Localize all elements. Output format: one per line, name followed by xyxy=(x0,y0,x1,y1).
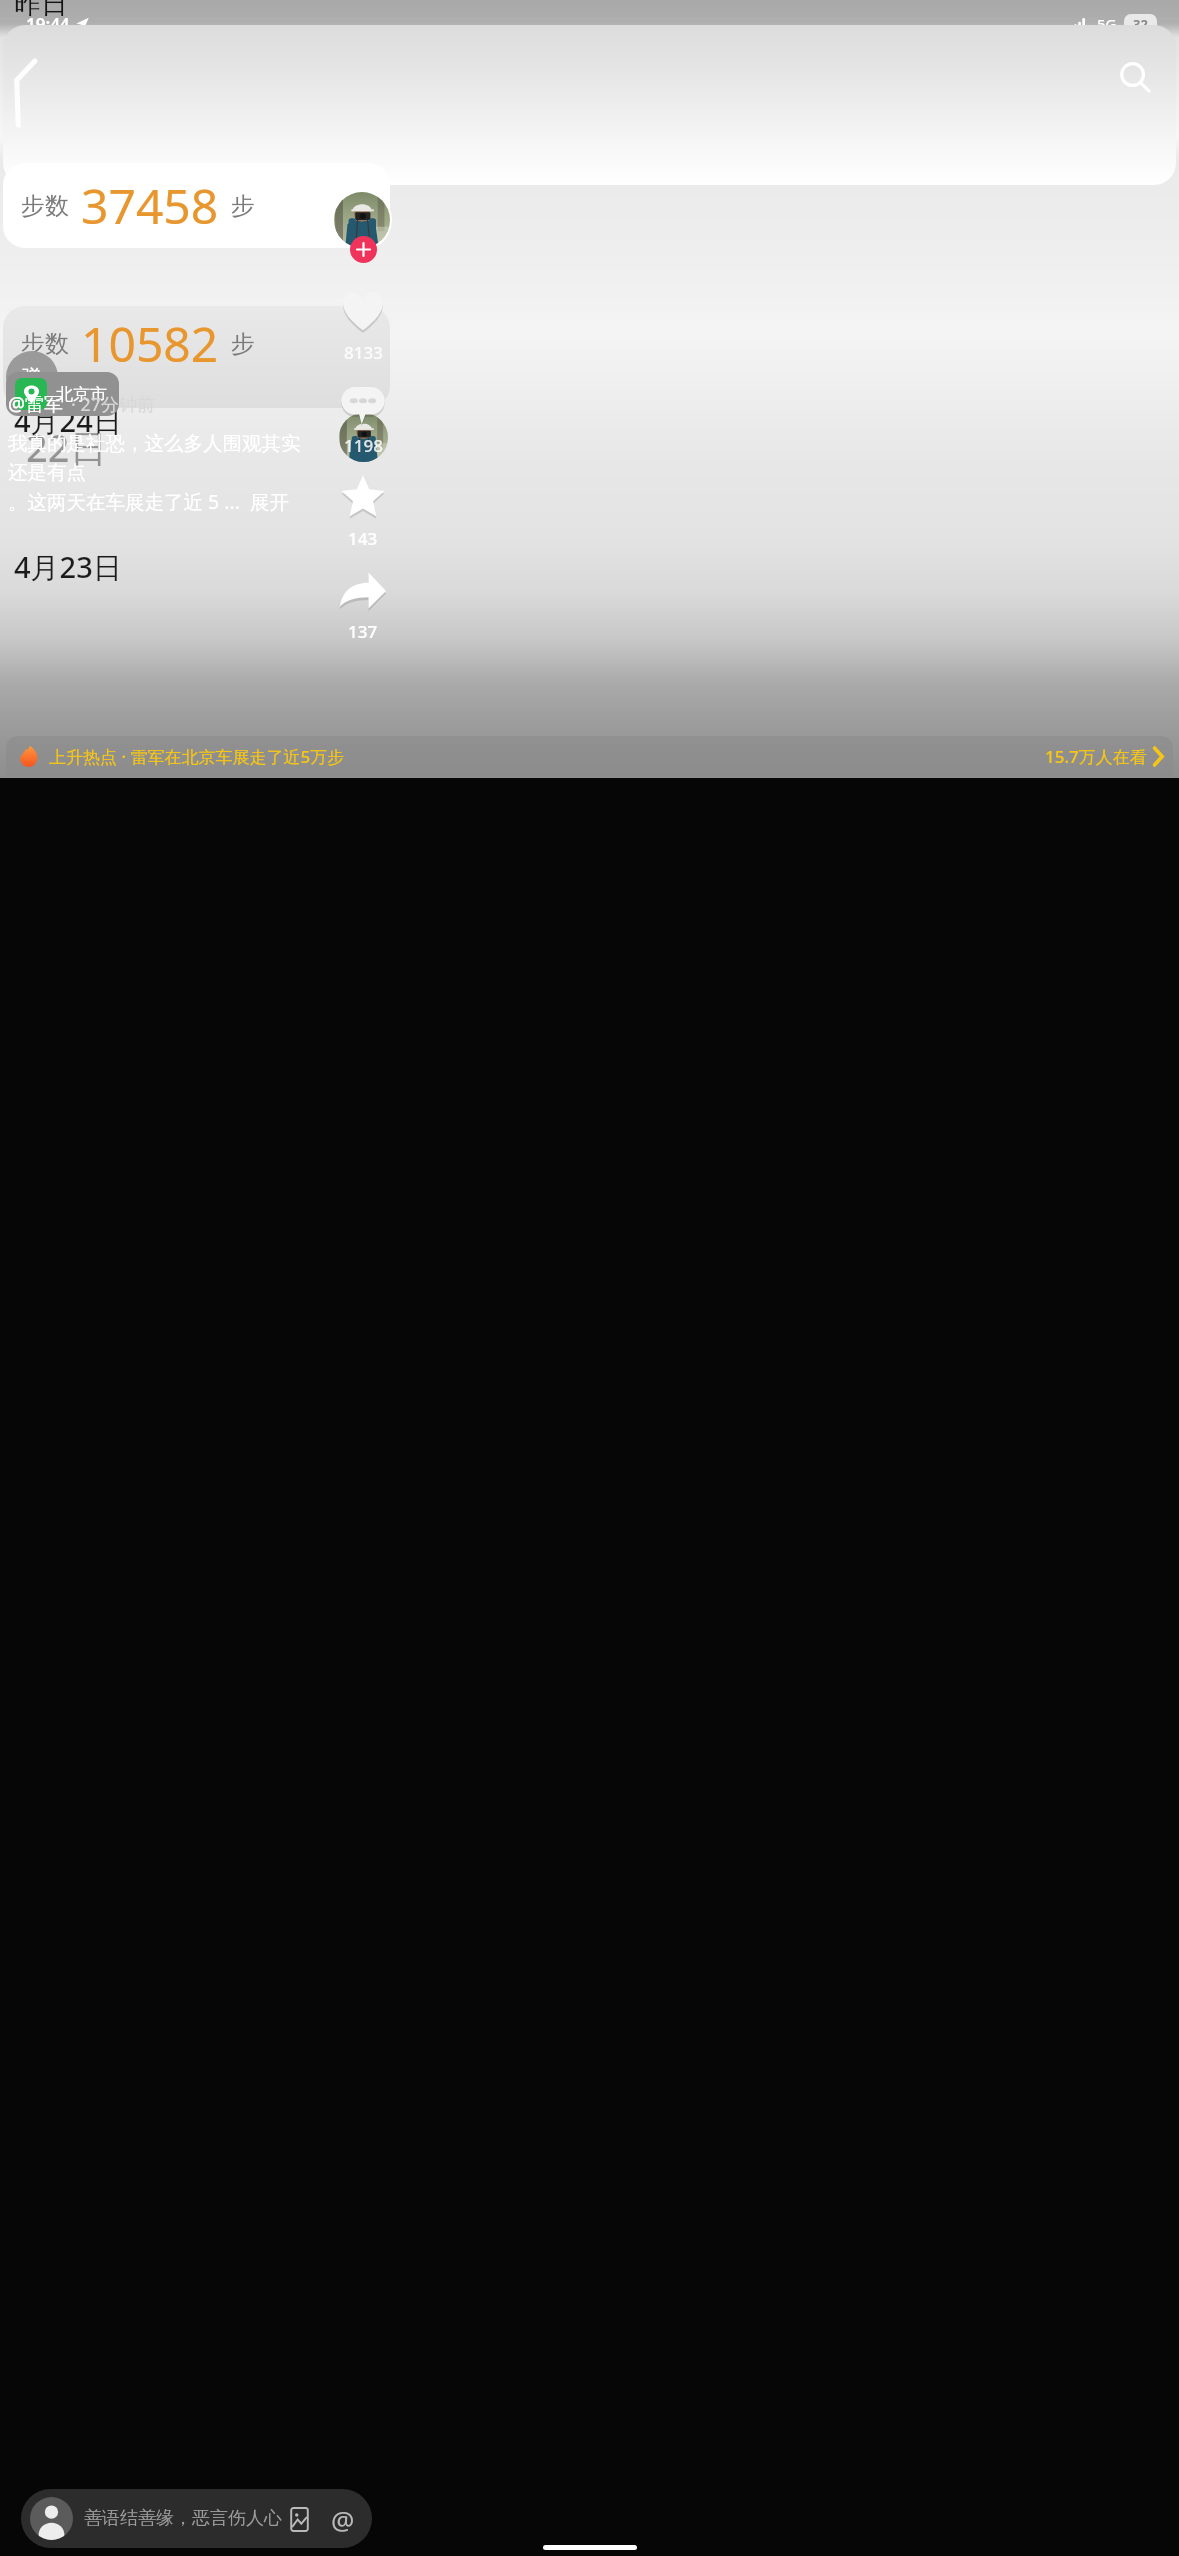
staticText: 我真的是社恐，这么多人围观其实还是有点 xyxy=(8,431,308,484)
staticText: 步 xyxy=(231,191,255,221)
button[interactable]: 善语结善缘，恶言伤人心 xyxy=(30,2489,363,2548)
button[interactable]: 提及 xyxy=(326,2502,360,2536)
staticText: 37458 xyxy=(81,173,219,238)
staticText: 137 xyxy=(348,620,378,643)
staticText: 15.7万人在看 xyxy=(1045,745,1147,768)
staticText: 4月23日 xyxy=(14,547,122,587)
staticText: · 27分钟前 xyxy=(71,392,156,417)
button[interactable]: 互动 1198 xyxy=(334,375,392,433)
staticText: 步数 xyxy=(21,191,69,221)
staticText: 22日 xyxy=(26,421,108,473)
staticText: 。这两天在车展走了近 5 ... xyxy=(8,488,240,515)
staticText: 5G xyxy=(1097,14,1117,34)
staticText: 上升热点 · 雷军在北京车展走了近5万步 xyxy=(49,745,345,768)
staticText: 19:44 xyxy=(26,13,70,36)
button[interactable]: 互动 143 xyxy=(334,468,392,526)
button[interactable]: @雷军 xyxy=(8,391,64,417)
button[interactable]: 上升热点 · 雷军在北京车展走了近5万步 xyxy=(18,736,1163,776)
button[interactable]: 步数 xyxy=(3,306,390,408)
staticText: 昨日 xyxy=(14,0,68,21)
staticText: 步数 xyxy=(21,329,69,359)
button[interactable]: 步数 xyxy=(3,163,390,248)
button[interactable]: Back xyxy=(11,61,37,125)
staticText: 10582 xyxy=(81,311,219,376)
staticText: 143 xyxy=(348,527,378,550)
button[interactable]: 展开 xyxy=(250,490,289,515)
button[interactable]: 互动 137 xyxy=(334,561,392,619)
staticText: 4月24日 xyxy=(14,401,122,441)
staticText: 32 xyxy=(1133,15,1148,33)
staticText: 善语结善缘，恶言伤人心 xyxy=(84,2507,282,2530)
button[interactable] xyxy=(339,413,388,462)
staticText: @ xyxy=(331,2502,355,2536)
button[interactable]: Search xyxy=(1110,52,1162,104)
staticText: 弹 xyxy=(22,365,42,390)
button[interactable]: 关注 xyxy=(332,190,394,252)
staticText: 1198 xyxy=(344,434,383,457)
staticText: 北京市 xyxy=(56,384,107,405)
button[interactable]: 图片 xyxy=(282,2502,316,2536)
staticText: 8133 xyxy=(344,341,383,364)
staticText: 步 xyxy=(231,329,255,359)
button[interactable]: 弹幕 xyxy=(6,351,58,403)
button[interactable]: 互动 8133 xyxy=(334,282,392,340)
button[interactable]: 北京市 xyxy=(15,372,110,416)
